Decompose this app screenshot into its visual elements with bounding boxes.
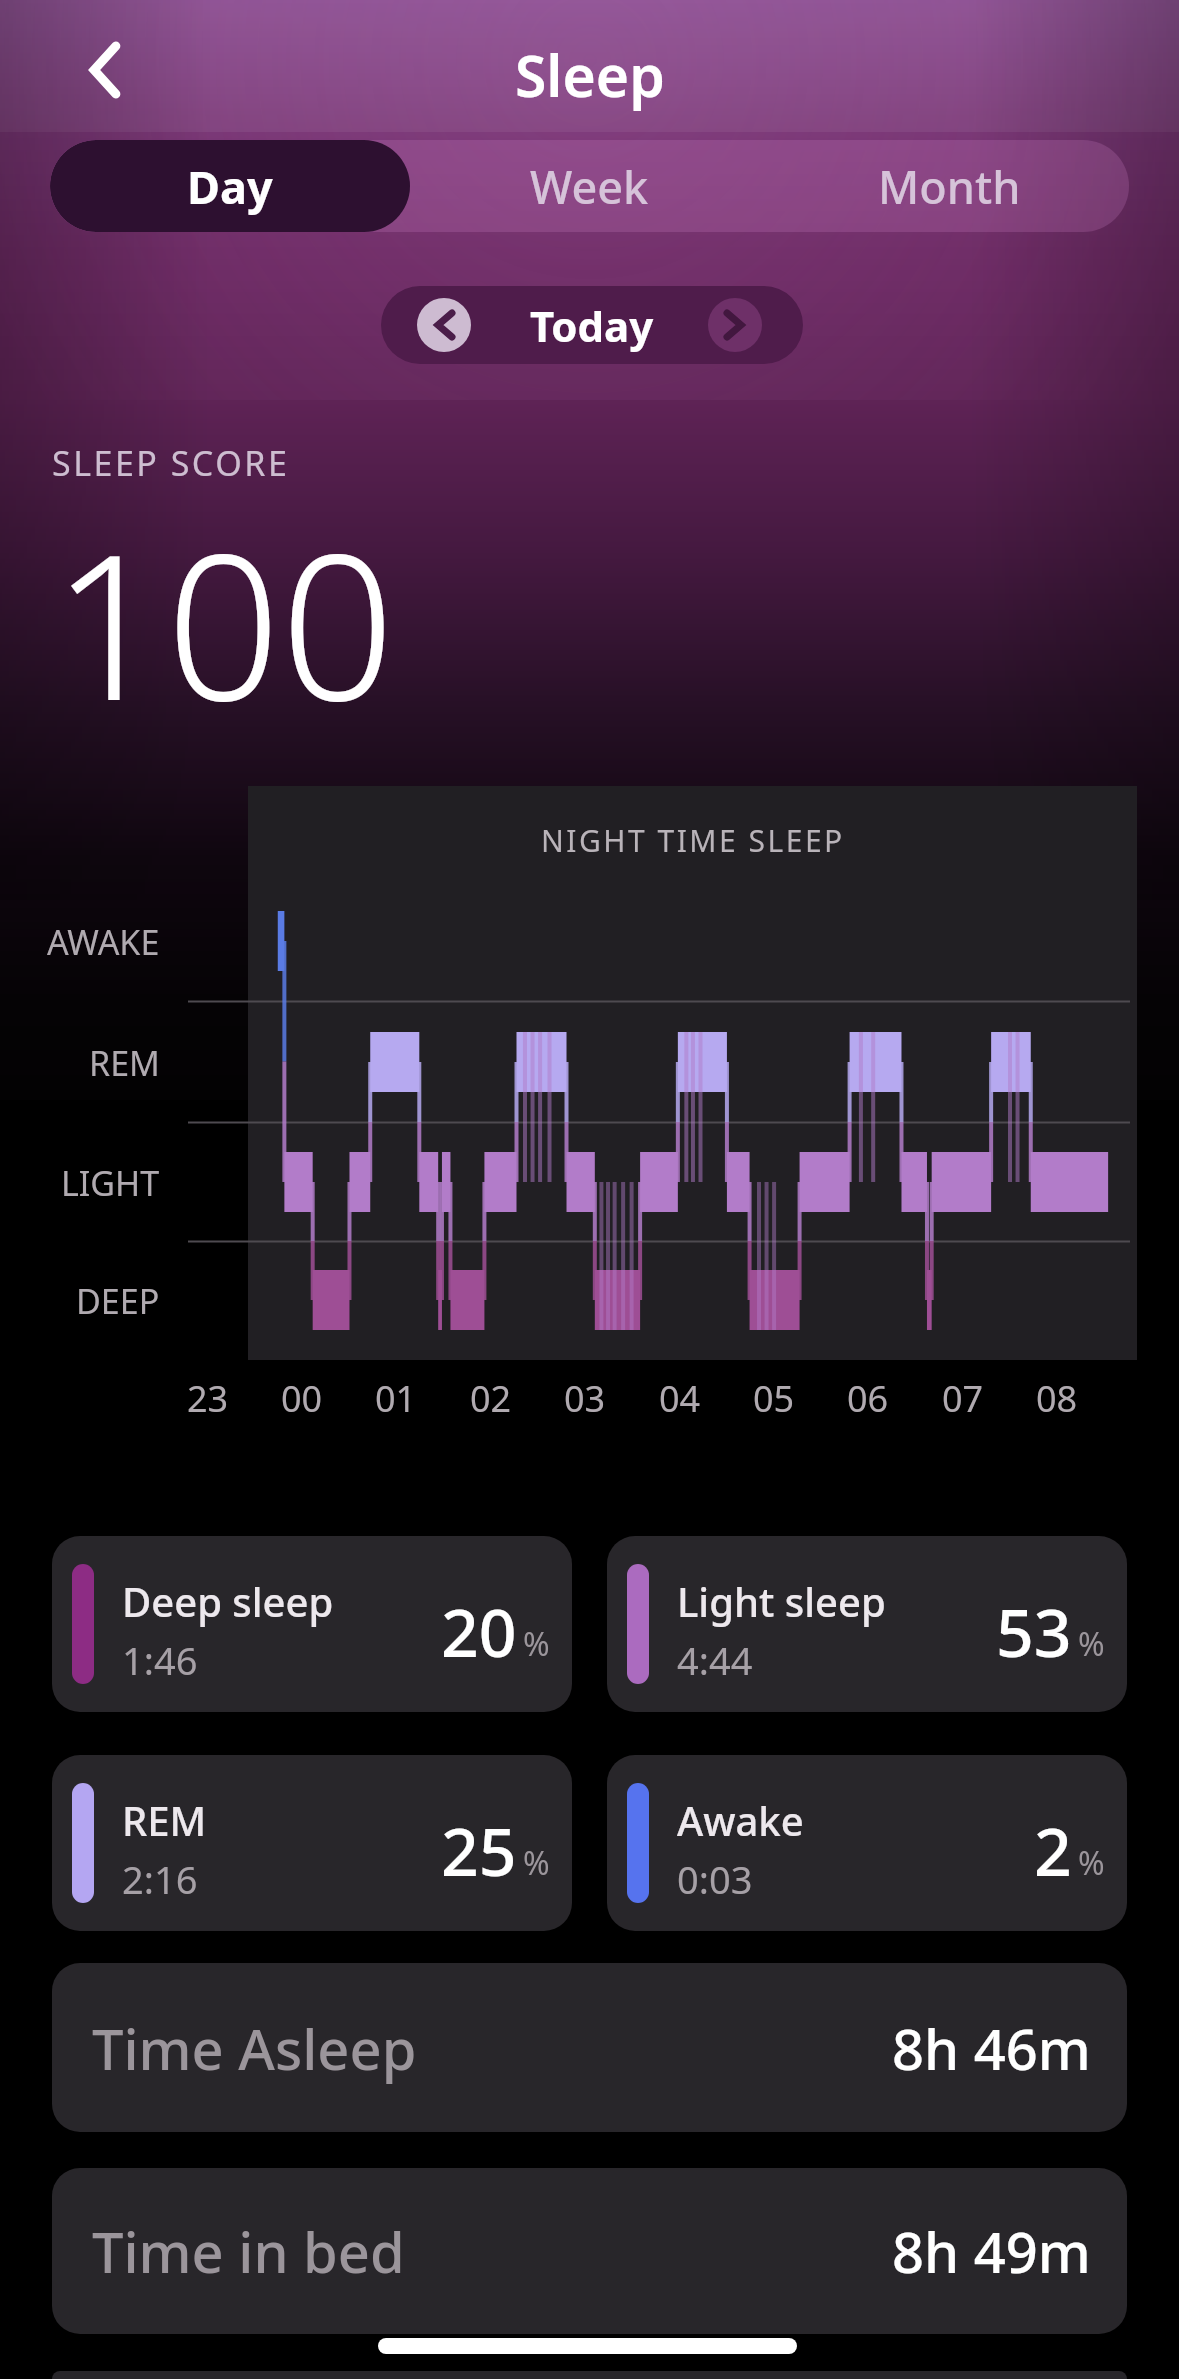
button[interactable]: Deep sleep: [52, 1536, 572, 1712]
button[interactable]: Light sleep: [607, 1536, 1127, 1712]
staticText: Day: [187, 156, 273, 217]
staticText: LIGHT: [61, 1160, 160, 1204]
staticText: 02: [470, 1374, 512, 1418]
staticText: 06: [847, 1374, 889, 1418]
staticText: Week: [530, 156, 649, 217]
staticText: REM: [89, 1040, 160, 1084]
button[interactable]: Time in bed: [52, 2168, 1127, 2334]
button[interactable]: [417, 298, 471, 352]
staticText: 07: [942, 1374, 984, 1418]
staticText: Awake: [677, 1793, 804, 1847]
staticText: 03: [564, 1374, 606, 1418]
staticText: 53: [996, 1586, 1072, 1676]
staticText: Sleep: [515, 36, 665, 114]
staticText: 8h 46m: [892, 2010, 1091, 2086]
staticText: 100: [52, 486, 395, 758]
staticText: SLEEP SCORE: [52, 440, 290, 486]
staticText: Deep sleep: [122, 1574, 334, 1628]
staticText: 23: [187, 1374, 229, 1418]
button[interactable]: Awake: [607, 1755, 1127, 1931]
staticText: 2: [1034, 1805, 1072, 1895]
staticText: 05: [753, 1374, 795, 1418]
button[interactable]: REM: [52, 1755, 572, 1931]
staticText: 25: [441, 1805, 517, 1895]
staticText: Month: [878, 156, 1021, 217]
staticText: %: [1078, 1841, 1105, 1885]
button[interactable]: [708, 298, 762, 352]
staticText: 8h 49m: [892, 2213, 1091, 2289]
staticText: 0:03: [677, 1853, 753, 1905]
staticText: 00: [281, 1374, 323, 1418]
staticText: %: [1078, 1622, 1105, 1666]
staticText: Today: [530, 297, 654, 354]
staticText: Time Asleep: [92, 2010, 417, 2086]
staticText: %: [523, 1622, 550, 1666]
staticText: AWAKE: [47, 919, 160, 963]
button[interactable]: Time Asleep: [52, 1963, 1127, 2132]
staticText: Light sleep: [677, 1574, 886, 1628]
button[interactable]: [70, 38, 140, 102]
staticText: NIGHT TIME SLEEP: [541, 820, 845, 856]
staticText: 20: [441, 1586, 517, 1676]
staticText: Time in bed: [92, 2213, 405, 2289]
staticText: 08: [1036, 1374, 1078, 1418]
button[interactable]: Week: [410, 140, 769, 232]
staticText: 2:16: [122, 1853, 198, 1905]
button[interactable]: Month: [769, 140, 1129, 232]
button[interactable]: Day: [50, 140, 410, 232]
staticText: %: [523, 1841, 550, 1885]
staticText: DEEP: [76, 1278, 160, 1322]
staticText: 04: [659, 1374, 701, 1418]
staticText: REM: [122, 1793, 207, 1847]
staticText: 1:46: [122, 1634, 198, 1686]
staticText: 4:44: [677, 1634, 753, 1686]
staticText: 01: [375, 1374, 417, 1418]
